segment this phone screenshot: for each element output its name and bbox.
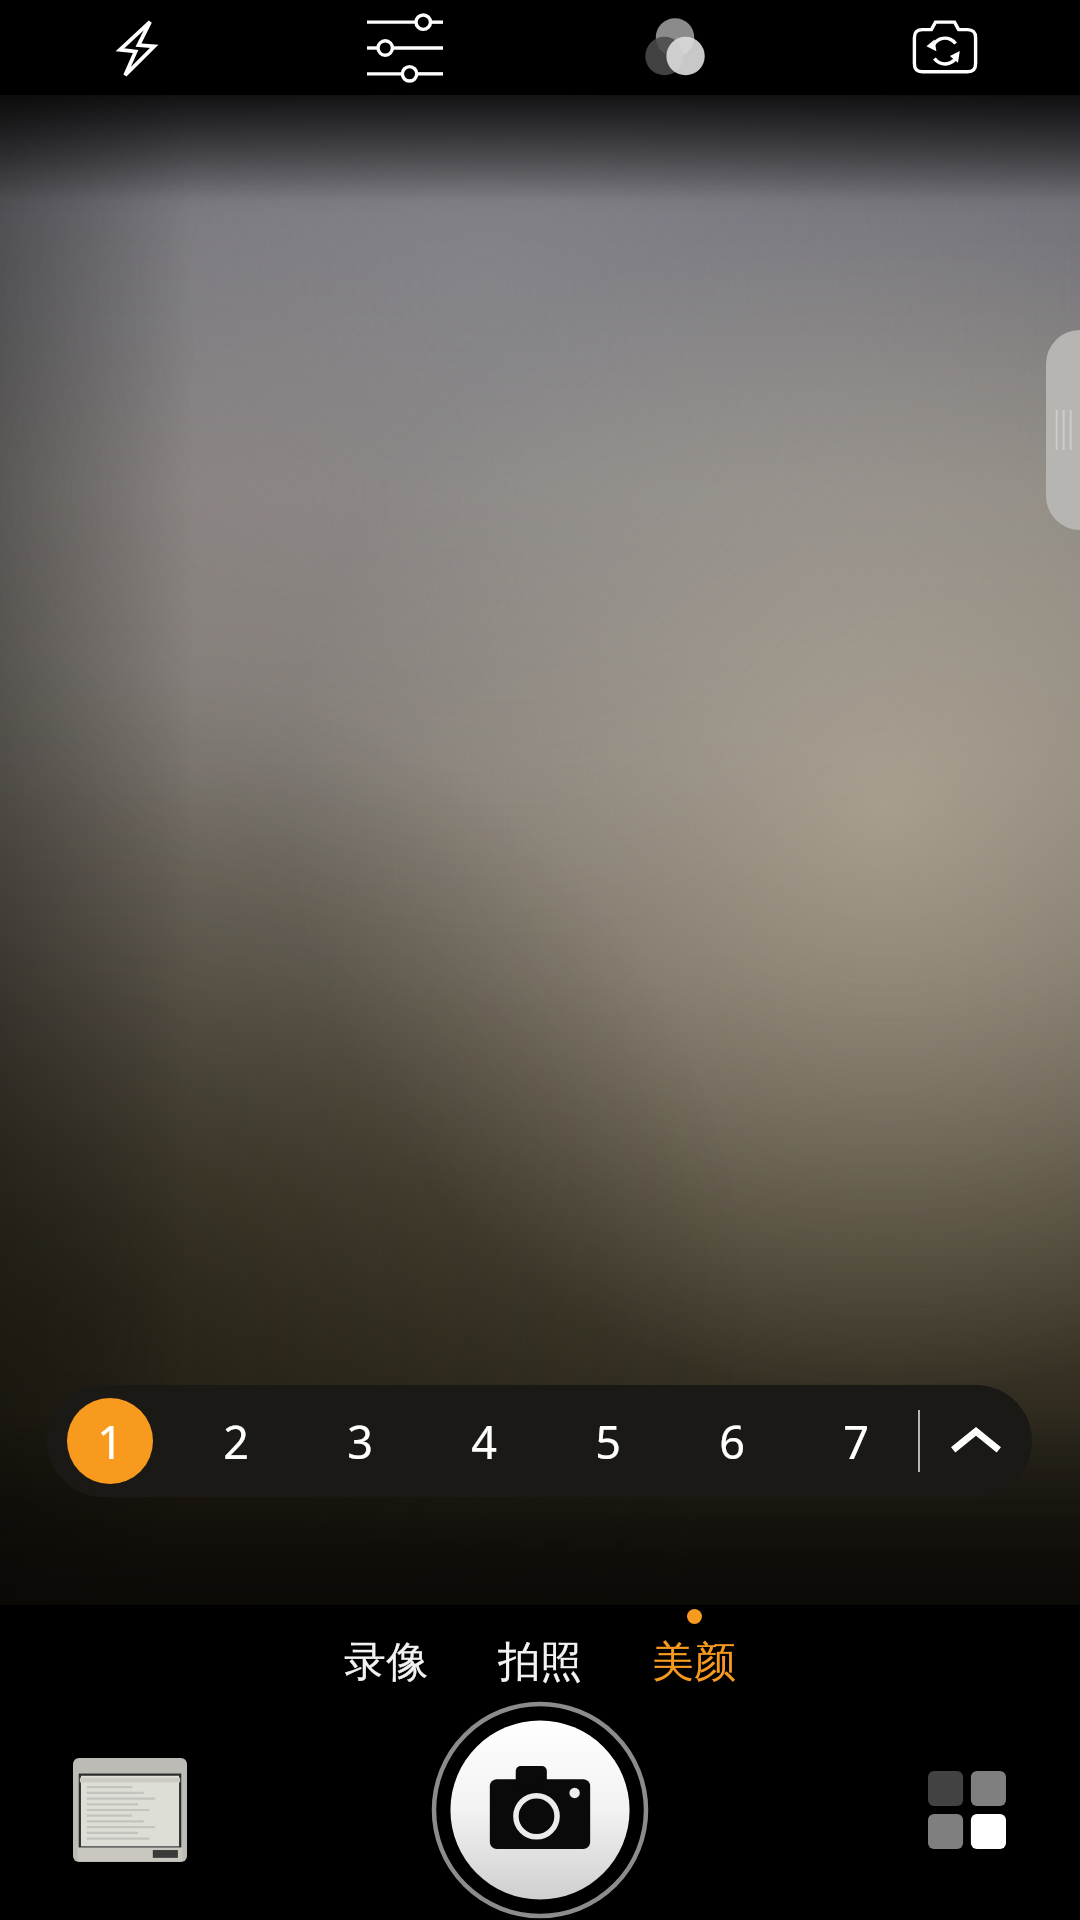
button[interactable]: Settings	[270, 0, 540, 95]
staticText: 拍照	[498, 1636, 582, 1689]
button[interactable]: 6	[670, 1385, 794, 1497]
button[interactable]: Side panel handle	[1046, 330, 1080, 530]
staticText: 4	[471, 1411, 497, 1472]
staticText: 录像	[344, 1636, 428, 1689]
button[interactable]: 录像	[322, 1605, 450, 1700]
button[interactable]: Switch camera	[810, 0, 1080, 95]
staticText: 1	[97, 1411, 123, 1472]
staticText: 5	[595, 1411, 621, 1472]
staticText: 7	[843, 1411, 869, 1472]
button[interactable]: 1	[47, 1385, 173, 1497]
button[interactable]: Filters	[540, 0, 810, 95]
staticText: 6	[719, 1411, 745, 1472]
button[interactable]: 5	[546, 1385, 670, 1497]
button[interactable]: Flash	[0, 0, 270, 95]
button[interactable]: Last photo	[73, 1758, 187, 1862]
staticText: 3	[347, 1411, 373, 1472]
button[interactable]: 7	[794, 1385, 918, 1497]
button[interactable]: 美颜	[630, 1605, 758, 1700]
button[interactable]: More zoom options	[920, 1385, 1032, 1497]
button[interactable]: Shutter	[425, 1700, 655, 1920]
button[interactable]: 2	[173, 1385, 298, 1497]
staticText: 美颜	[652, 1636, 736, 1689]
button[interactable]: 拍照	[476, 1605, 604, 1700]
button[interactable]: 4	[422, 1385, 546, 1497]
staticText: 2	[223, 1411, 249, 1472]
button[interactable]: Gallery grid	[922, 1765, 1012, 1855]
button[interactable]: 3	[298, 1385, 422, 1497]
